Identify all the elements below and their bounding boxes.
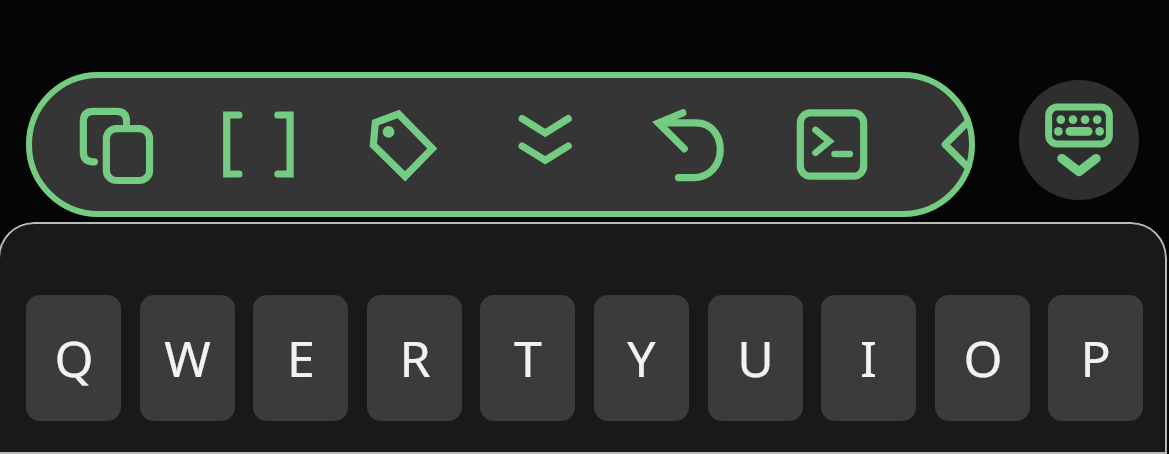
button[interactable]: E: [253, 295, 348, 421]
staticText: O: [963, 324, 1003, 392]
button[interactable]: T: [480, 295, 575, 421]
button[interactable]: Copy: [63, 93, 167, 197]
button[interactable]: U: [708, 295, 803, 421]
button[interactable]: Tag: [350, 93, 454, 197]
button[interactable]: I: [821, 295, 916, 421]
button[interactable]: Hide keyboard: [1019, 80, 1139, 200]
staticText: T: [514, 324, 542, 392]
button[interactable]: Code: [923, 93, 1027, 197]
button[interactable]: O: [935, 295, 1030, 421]
button[interactable]: Brackets: [206, 93, 310, 197]
button[interactable]: Terminal: [780, 93, 884, 197]
staticText: I: [860, 324, 877, 392]
button[interactable]: Scroll down: [493, 93, 597, 197]
staticText: W: [164, 324, 211, 392]
staticText: R: [399, 324, 431, 392]
button[interactable]: P: [1048, 295, 1143, 421]
staticText: Y: [627, 324, 656, 392]
button[interactable]: Undo: [637, 93, 741, 197]
staticText: E: [287, 324, 315, 392]
button[interactable]: Y: [594, 295, 689, 421]
button[interactable]: W: [140, 295, 235, 421]
button[interactable]: R: [367, 295, 462, 421]
staticText: P: [1080, 324, 1111, 392]
staticText: U: [737, 324, 774, 392]
button[interactable]: Q: [26, 295, 121, 421]
staticText: Q: [54, 324, 94, 392]
